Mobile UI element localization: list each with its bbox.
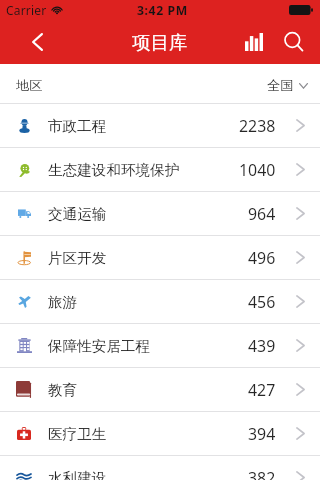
button[interactable]: 旅游 [0,280,320,323]
staticText: 教育 [48,381,78,399]
button[interactable]: Back [0,20,58,64]
staticText: 水利建设 [48,469,107,480]
button[interactable]: Statistics [234,20,274,64]
staticText: 964 [248,203,276,225]
staticText: 456 [248,291,276,313]
staticText: 1040 [239,159,276,181]
staticText: 交通运输 [48,205,107,223]
staticText: 片区开发 [48,249,107,267]
staticText: 市政工程 [48,117,107,135]
button[interactable]: 地区 [0,64,320,103]
button[interactable]: 片区开发 [0,236,320,279]
button[interactable]: 交通运输 [0,192,320,235]
staticText: 394 [248,423,276,445]
staticText: 项目库 [132,31,188,54]
button[interactable]: 教育 [0,368,320,411]
staticText: 2238 [239,115,276,137]
staticText: 382 [248,467,276,480]
staticText: 427 [248,379,276,401]
staticText: 医疗卫生 [48,425,107,443]
staticText: 保障性安居工程 [48,337,151,355]
staticText: 439 [248,335,276,357]
button[interactable]: 保障性安居工程 [0,324,320,367]
staticText: 旅游 [48,293,78,311]
staticText: Carrier [6,2,47,18]
staticText: 3:42 PM [137,2,188,19]
staticText: 496 [248,247,276,269]
button[interactable]: 医疗卫生 [0,412,320,455]
staticText: 地区 [16,77,43,94]
button[interactable]: 市政工程 [0,104,320,147]
button[interactable]: 水利建设 [0,456,320,480]
button[interactable]: 生态建设和环境保护 [0,148,320,191]
staticText: 全国 [267,77,294,94]
button[interactable]: Search [274,20,314,64]
staticText: 生态建设和环境保护 [48,161,180,179]
